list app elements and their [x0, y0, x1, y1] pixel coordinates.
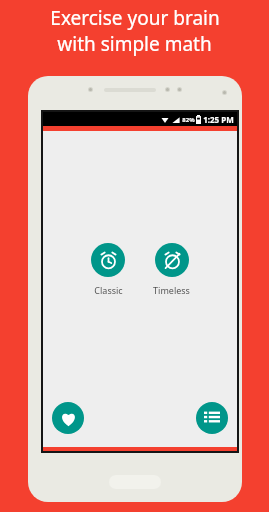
staticText: Classic: [94, 284, 123, 296]
staticText: with simple math: [57, 31, 212, 57]
staticText: 1:25 PM: [203, 114, 234, 125]
staticText: Exercise your brain: [50, 5, 220, 31]
button[interactable]: Classic: [87, 243, 129, 296]
button[interactable]: Scores: [196, 402, 228, 434]
staticText: Timeless: [153, 284, 190, 296]
button[interactable]: Favourites: [52, 402, 84, 434]
staticText: 82%: [182, 116, 195, 124]
button[interactable]: Timeless: [149, 243, 194, 296]
